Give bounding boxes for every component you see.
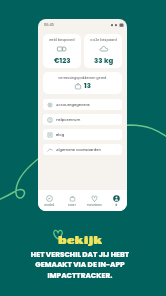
staticText: bekijk — [58, 233, 103, 246]
button[interactable]: Geld bespaard — [43, 34, 81, 68]
staticText: 33 kg — [94, 56, 114, 66]
button[interactable]: Accountgegevens — [43, 99, 122, 110]
button[interactable]: Helpcentrum — [43, 114, 122, 125]
staticText: Kaart — [68, 203, 76, 207]
staticText: Helpcentrum — [56, 117, 81, 122]
button[interactable]: Kaart — [61, 195, 83, 207]
staticText: CO2e bespaard — [90, 37, 117, 42]
staticText: 06:45 — [44, 22, 55, 27]
staticText: Verrassingspakketten gered — [58, 75, 107, 80]
button[interactable]: Ontdek — [38, 195, 61, 207]
staticText: HET VERSCHIL DAT JIJ HEBT GEMAAKT VIA DE… — [0, 249, 163, 280]
button[interactable]: Blog — [43, 129, 122, 140]
staticText: Favorieten — [87, 203, 102, 207]
button[interactable]: Verrassingspakketten gered — [43, 72, 122, 94]
button[interactable]: Favorieten — [83, 195, 105, 207]
button[interactable]: Algemene voorwaarden — [43, 144, 122, 155]
staticText: Ik — [115, 203, 118, 207]
staticText: Algemene voorwaarden — [56, 147, 101, 152]
staticText: Accountgegevens — [56, 102, 90, 107]
staticText: Ontdek — [44, 203, 55, 207]
button[interactable]: CO2e bespaard — [84, 34, 122, 68]
staticText: Blog — [56, 132, 65, 137]
staticText: 13 — [84, 81, 91, 91]
staticText: €123 — [54, 56, 71, 66]
button[interactable]: Ik — [105, 195, 127, 207]
staticText: Geld bespaard — [49, 37, 75, 42]
